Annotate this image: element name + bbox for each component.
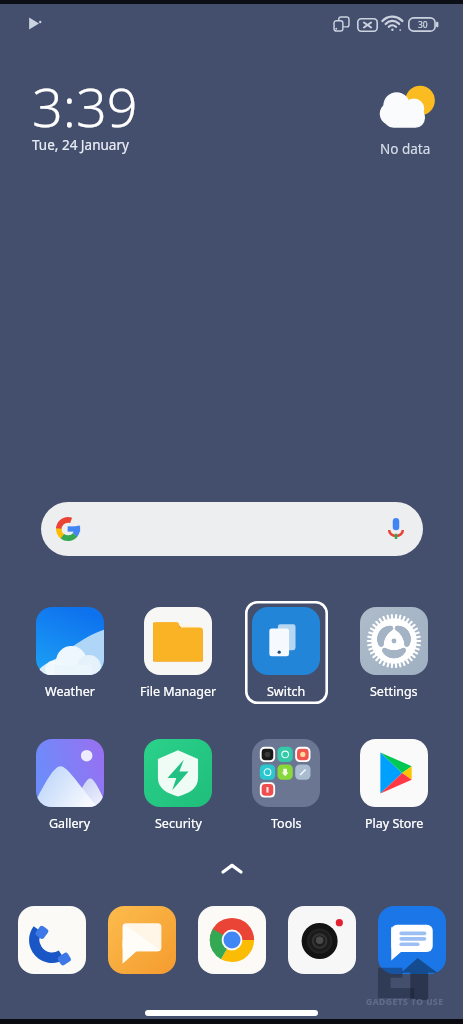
button[interactable] bbox=[41, 502, 423, 556]
staticText: Gallery bbox=[49, 815, 91, 832]
staticText: File Manager bbox=[140, 683, 217, 700]
staticText: 3:39 bbox=[32, 69, 138, 143]
other: Open app drawer bbox=[222, 863, 242, 875]
button[interactable]: Phone bbox=[18, 906, 86, 974]
staticText: Switch bbox=[267, 683, 306, 700]
button[interactable]: Messaging bbox=[108, 906, 176, 974]
button[interactable]: Weather bbox=[26, 607, 114, 700]
button[interactable]: File Manager bbox=[134, 607, 222, 700]
other: Play Store notification bbox=[27, 16, 42, 31]
button[interactable]: Settings bbox=[350, 607, 438, 700]
button[interactable]: Camera bbox=[288, 906, 356, 974]
staticText: Play Store bbox=[365, 815, 424, 832]
button[interactable]: Tools bbox=[242, 739, 330, 832]
button[interactable]: Chrome bbox=[198, 906, 266, 974]
staticText: Security bbox=[155, 815, 202, 832]
button[interactable]: Gallery bbox=[26, 739, 114, 832]
staticText: No data bbox=[380, 140, 431, 158]
staticText: 30 bbox=[418, 19, 428, 31]
staticText: Tools bbox=[271, 815, 302, 832]
button[interactable]: Security bbox=[134, 739, 222, 832]
button[interactable]: No data bbox=[376, 86, 434, 156]
staticText: Weather bbox=[45, 683, 95, 700]
button[interactable]: Switch bbox=[242, 607, 330, 700]
button[interactable]: Messages bbox=[378, 906, 446, 974]
staticText: Tue, 24 January bbox=[32, 136, 129, 154]
staticText: GADGETS TO USE bbox=[366, 996, 444, 1008]
staticText: Settings bbox=[370, 683, 418, 700]
button[interactable]: Play Store bbox=[350, 739, 438, 832]
